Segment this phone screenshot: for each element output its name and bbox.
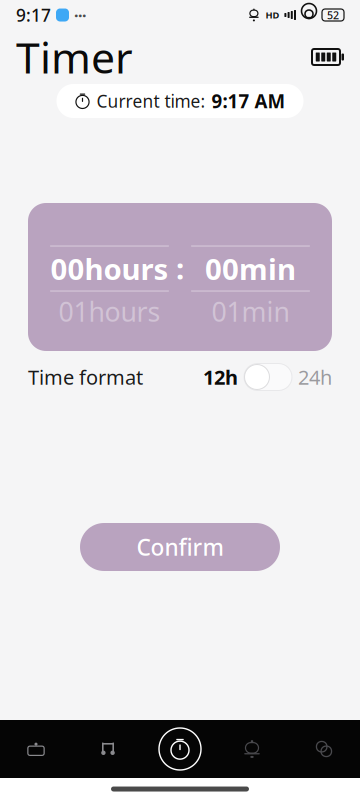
staticText: 01hours [58,294,160,329]
button[interactable]: Timer [144,720,216,778]
staticText: Timer [16,29,133,85]
staticText: 00hours [50,249,168,288]
staticText: 01min [211,294,289,329]
staticText: Current time: [96,89,205,112]
button[interactable]: Alarms [216,720,288,778]
staticText: 9:17 AM [211,89,285,113]
button[interactable]: Connect [288,720,360,778]
staticText: 24h [298,364,332,390]
staticText: 00min [205,249,296,288]
staticText: Time format [28,364,143,390]
staticText: : [176,248,184,287]
button[interactable]: Music [72,720,144,778]
staticText: 9:17 [16,3,51,26]
staticText: 12h [203,364,238,390]
staticText: Confirm [136,532,223,562]
staticText: HD [265,9,279,21]
button[interactable]: Home [0,720,72,778]
staticText: ··· [74,4,86,26]
staticText: 52 [327,8,339,22]
button[interactable]: Confirm [80,523,280,571]
button[interactable]: Toggle time format [238,363,298,390]
button[interactable]: Current time: [56,84,303,118]
